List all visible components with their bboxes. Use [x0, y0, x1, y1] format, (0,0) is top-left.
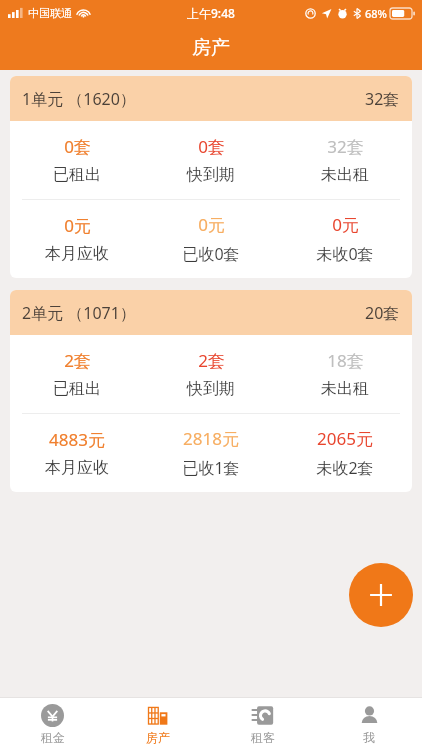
staticText: 快到期	[187, 165, 235, 185]
staticText: 4883元	[49, 428, 105, 451]
button[interactable]: 2套	[10, 335, 144, 413]
staticText: 本月应收	[45, 244, 109, 264]
staticText: 已租出	[53, 165, 101, 185]
staticText: 0元	[332, 213, 359, 236]
staticText: 68%	[365, 6, 387, 21]
button[interactable]: 2套	[144, 335, 278, 413]
staticText: 0元	[64, 214, 91, 237]
button[interactable]: 2065元	[278, 414, 412, 492]
button[interactable]: 0套	[144, 121, 278, 199]
staticText: 未出租	[321, 165, 369, 185]
staticText: 上午9:48	[187, 5, 235, 21]
staticText: 18套	[327, 349, 364, 372]
staticText: 未出租	[321, 379, 369, 399]
staticText: 已租出	[53, 379, 101, 399]
staticText: 2065元	[317, 427, 373, 450]
staticText: 房产	[192, 36, 230, 60]
button[interactable]: 租客	[210, 698, 316, 750]
staticText: 我	[363, 730, 375, 745]
button[interactable]: 0元	[278, 200, 412, 278]
staticText: 0套	[198, 135, 225, 158]
button[interactable]: 1单元 （1620）	[10, 76, 412, 278]
button[interactable]: 我	[316, 698, 422, 750]
button[interactable]: 租金	[0, 698, 105, 750]
staticText: 房产	[146, 730, 170, 745]
button[interactable]: 房产	[105, 698, 210, 750]
staticText: 已收0套	[182, 243, 240, 265]
button[interactable]: 2818元	[144, 414, 278, 492]
staticText: 32套	[365, 88, 400, 110]
button[interactable]: 4883元	[10, 414, 144, 492]
button[interactable]: 0元	[144, 200, 278, 278]
button[interactable]: 32套	[278, 121, 412, 199]
staticText: 租客	[251, 730, 275, 745]
staticText: 0元	[198, 213, 225, 236]
button[interactable]: 0套	[10, 121, 144, 199]
staticText: 2818元	[183, 427, 239, 450]
staticText: 本月应收	[45, 458, 109, 478]
staticText: 未收2套	[316, 457, 374, 479]
staticText: 2套	[64, 349, 91, 372]
staticText: 0套	[64, 135, 91, 158]
staticText: 20套	[365, 302, 400, 324]
button[interactable]: 0元	[10, 200, 144, 278]
staticText: 1单元 （1620）	[22, 88, 136, 110]
staticText: 中国联通	[28, 6, 72, 20]
staticText: 32套	[327, 135, 364, 158]
staticText: 快到期	[187, 379, 235, 399]
staticText: 2单元 （1071）	[22, 302, 136, 324]
staticText: 已收1套	[182, 457, 240, 479]
button[interactable]: Add	[349, 563, 413, 627]
button[interactable]: 2单元 （1071）	[10, 290, 412, 492]
staticText: 租金	[41, 730, 65, 745]
button[interactable]: 18套	[278, 335, 412, 413]
staticText: 未收0套	[316, 243, 374, 265]
staticText: 2套	[198, 349, 225, 372]
